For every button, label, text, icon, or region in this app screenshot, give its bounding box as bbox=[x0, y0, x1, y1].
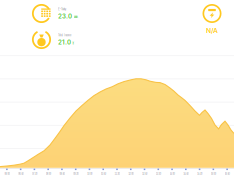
staticText: 06:00 bbox=[4, 171, 9, 176]
staticText: 10:40 bbox=[101, 171, 106, 176]
staticText: 14:00 bbox=[170, 171, 175, 176]
staticText: 16:00 bbox=[211, 171, 216, 176]
staticText: 06:40 bbox=[18, 171, 23, 176]
staticText: Total Income bbox=[58, 33, 71, 37]
staticText: 09:20 bbox=[73, 171, 78, 176]
staticText: 12:00 bbox=[128, 171, 133, 176]
staticText: 23.0 bbox=[58, 12, 72, 20]
staticText: 15:20 bbox=[197, 171, 202, 176]
staticText: 12:40 bbox=[142, 171, 147, 176]
staticText: 07:20 bbox=[32, 171, 37, 176]
staticText: kWh bbox=[74, 15, 78, 19]
staticText: 10:00 bbox=[87, 171, 92, 176]
staticText: 08:00 bbox=[46, 171, 51, 176]
staticText: E-Today bbox=[58, 7, 66, 11]
staticText: 16:40 bbox=[225, 171, 230, 176]
staticText: 13:20 bbox=[156, 171, 161, 176]
staticText: 14:40 bbox=[183, 171, 188, 176]
staticText: ¥ bbox=[73, 41, 74, 45]
staticText: N/A bbox=[206, 26, 218, 35]
staticText: 08:40 bbox=[59, 171, 64, 176]
staticText: 11:20 bbox=[114, 171, 119, 176]
staticText: 21.0 bbox=[58, 38, 71, 46]
